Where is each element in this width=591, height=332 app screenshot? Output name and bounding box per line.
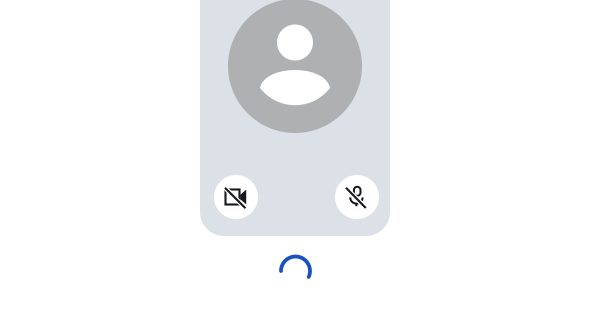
button[interactable]: Turn camera on [214, 175, 258, 219]
button[interactable]: Unmute microphone [335, 175, 379, 219]
